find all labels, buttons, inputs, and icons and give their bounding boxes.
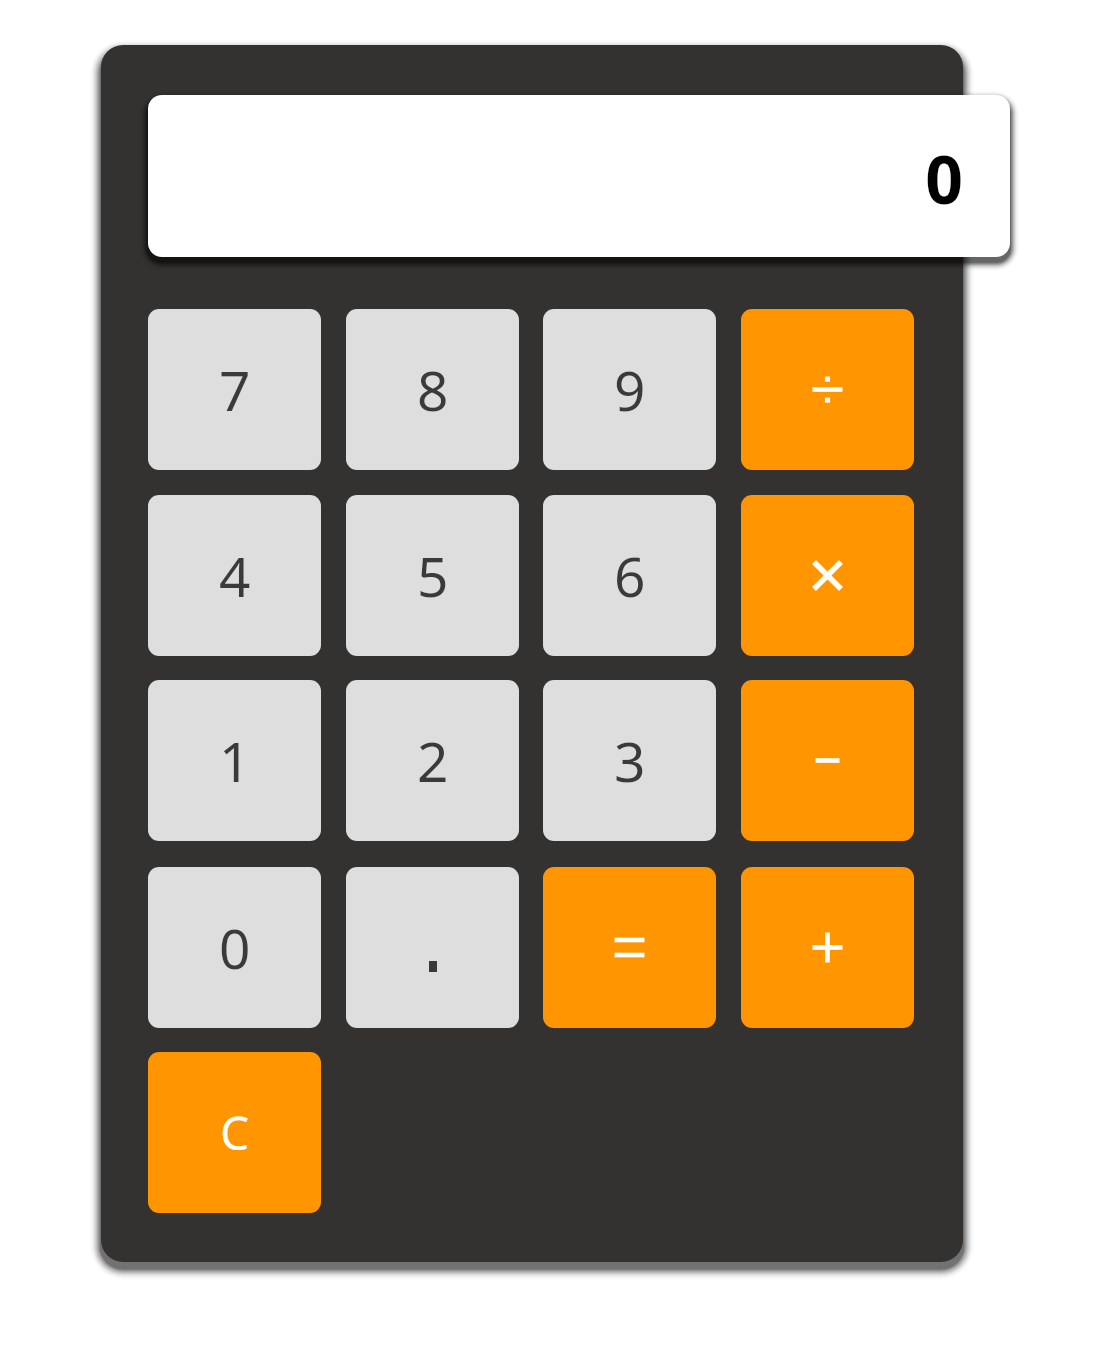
- button[interactable]: 4: [148, 495, 321, 656]
- staticText: 2: [417, 723, 449, 798]
- button[interactable]: 1: [148, 680, 321, 841]
- button[interactable]: 2: [346, 680, 519, 841]
- button[interactable]: 5: [346, 495, 519, 656]
- staticText: 0: [925, 133, 963, 223]
- staticText: 1: [219, 723, 251, 798]
- staticText: 9: [614, 352, 646, 427]
- button[interactable]: 0: [148, 95, 1010, 257]
- staticText: 3: [614, 723, 646, 798]
- button[interactable]: 7: [148, 309, 321, 470]
- staticText: 4: [219, 538, 251, 613]
- staticText: 7: [219, 352, 251, 427]
- button[interactable]: 0: [148, 867, 321, 1028]
- staticText: 0: [219, 910, 251, 985]
- button[interactable]: 6: [543, 495, 716, 656]
- button[interactable]: Clear: [148, 1052, 321, 1213]
- button[interactable]: 8: [346, 309, 519, 470]
- button[interactable]: [346, 867, 519, 1028]
- button[interactable]: Subtract: [741, 680, 914, 841]
- staticText: 5: [417, 538, 449, 613]
- button[interactable]: Multiply: [741, 495, 914, 656]
- button[interactable]: Equals: [543, 867, 716, 1028]
- button[interactable]: Add: [741, 867, 914, 1028]
- button[interactable]: 9: [543, 309, 716, 470]
- staticText: 6: [614, 538, 646, 613]
- staticText: C: [220, 1101, 250, 1164]
- button[interactable]: Divide: [741, 309, 914, 470]
- staticText: 8: [417, 352, 449, 427]
- button[interactable]: 3: [543, 680, 716, 841]
